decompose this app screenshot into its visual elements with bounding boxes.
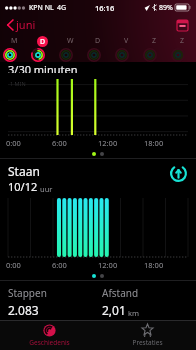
staticText: 6:00 — [52, 260, 67, 270]
staticText: D — [95, 36, 101, 46]
button[interactable]: 3/30 minuten — [0, 62, 196, 158]
staticText: km — [128, 308, 140, 318]
button[interactable]: Day rings — [56, 48, 84, 62]
staticText: 18:00 — [144, 138, 164, 148]
staticText: W — [67, 36, 74, 46]
button[interactable]: Geschiedenis — [0, 321, 98, 350]
button[interactable]: Day rings — [0, 48, 28, 62]
staticText: 4G — [57, 3, 67, 13]
staticText: Geschiedenis — [29, 338, 70, 347]
staticText: Staan — [8, 163, 40, 179]
button[interactable]: Day rings — [84, 48, 112, 62]
staticText: D — [40, 37, 46, 47]
button[interactable]: Staan — [0, 158, 196, 280]
staticText: Z — [152, 36, 157, 46]
staticText: 16:16 — [95, 3, 115, 13]
staticText: Afstand — [102, 286, 139, 300]
button[interactable]: Stappen — [0, 281, 196, 320]
button[interactable]: juni — [5, 17, 38, 32]
staticText: Z — [180, 36, 185, 46]
staticText: 0:00 — [6, 138, 21, 148]
staticText: 1 MIN — [10, 80, 26, 87]
staticText: KPN NL — [29, 3, 54, 13]
staticText: M — [11, 36, 18, 46]
staticText: 12:00 — [98, 138, 118, 148]
staticText: 6:00 — [52, 138, 67, 148]
staticText: 18:00 — [144, 260, 164, 270]
staticText: Stappen — [8, 286, 47, 300]
staticText: 12:00 — [98, 260, 118, 270]
button[interactable]: Day rings — [28, 48, 56, 62]
staticText: juni — [16, 17, 36, 32]
staticText: uur — [40, 184, 53, 194]
button[interactable]: Day rings — [168, 48, 196, 62]
staticText: 2,01 — [102, 302, 126, 318]
staticText: 2.083 — [8, 302, 39, 318]
staticText: 3/30 minuten — [8, 62, 78, 73]
staticText: 10/12 — [8, 179, 38, 194]
button[interactable]: Prestaties — [98, 321, 196, 350]
staticText: V — [124, 36, 129, 46]
button[interactable]: Calendar — [173, 16, 191, 34]
staticText: 0:00 — [6, 260, 21, 270]
button[interactable]: Day rings — [140, 48, 168, 62]
other: Stand — [168, 163, 188, 183]
staticText: 89% — [159, 3, 173, 13]
staticText: Prestaties — [132, 338, 163, 347]
button[interactable]: Day rings — [112, 48, 140, 62]
